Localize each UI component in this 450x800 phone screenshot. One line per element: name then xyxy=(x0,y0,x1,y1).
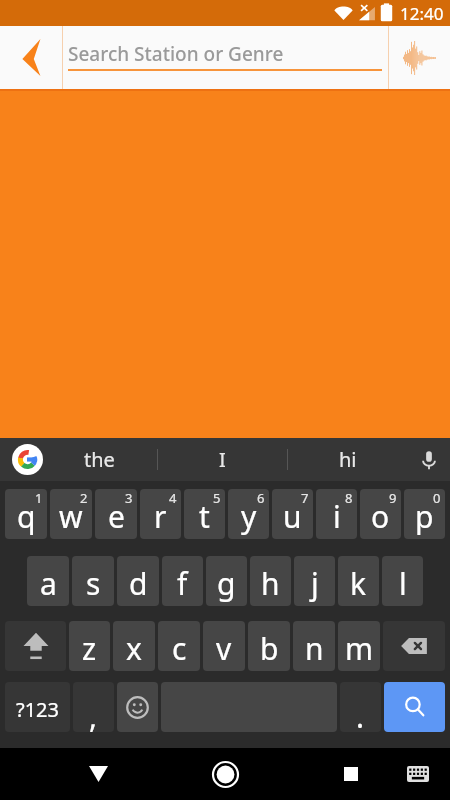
staticText: hi xyxy=(339,446,357,473)
staticText: 1 xyxy=(35,489,43,507)
button[interactable]: hi xyxy=(288,438,407,481)
button[interactable]: Hide keyboard xyxy=(74,748,122,800)
button[interactable]: t xyxy=(184,489,225,539)
button[interactable]: c xyxy=(158,621,200,671)
button[interactable]: m xyxy=(338,621,380,671)
button[interactable]: y xyxy=(228,489,269,539)
button[interactable]: Search xyxy=(384,682,445,732)
staticText: 7 xyxy=(301,489,309,507)
staticText: , xyxy=(89,696,98,732)
staticText: k xyxy=(350,563,367,604)
staticText: 9 xyxy=(389,489,397,507)
button[interactable]: Back xyxy=(0,26,62,89)
staticText: 0 xyxy=(433,489,441,507)
staticText: g xyxy=(217,563,236,604)
button[interactable]: e xyxy=(95,489,137,539)
staticText: b xyxy=(260,628,279,669)
staticText: h xyxy=(261,563,280,604)
staticText: e xyxy=(108,496,125,537)
button[interactable]: a xyxy=(27,556,69,606)
button[interactable]: Switch keyboard xyxy=(395,748,440,800)
staticText: u xyxy=(283,496,302,537)
staticText: p xyxy=(415,496,434,537)
button[interactable]: z xyxy=(69,621,110,671)
button[interactable]: Emoji xyxy=(117,682,158,732)
button[interactable]: o xyxy=(360,489,401,539)
button[interactable]: Voice input xyxy=(407,438,450,481)
button[interactable]: the xyxy=(50,438,149,481)
button[interactable]: I xyxy=(158,438,287,481)
staticText: 8 xyxy=(345,489,353,507)
button[interactable]: w xyxy=(50,489,92,539)
button[interactable]: u xyxy=(272,489,313,539)
staticText: v xyxy=(216,628,232,669)
button[interactable]: n xyxy=(293,621,335,671)
button[interactable]: q xyxy=(5,489,47,539)
button[interactable]: s xyxy=(72,556,114,606)
staticText: m xyxy=(345,628,374,669)
staticText: ?123 xyxy=(16,696,59,723)
button[interactable]: Backspace xyxy=(383,621,445,671)
button[interactable]: . xyxy=(340,682,381,732)
button[interactable]: Home xyxy=(201,748,249,800)
staticText: . xyxy=(356,696,365,732)
staticText: i xyxy=(333,496,341,537)
button[interactable]: p xyxy=(404,489,445,539)
staticText: s xyxy=(86,563,101,604)
staticText: 5 xyxy=(213,489,221,507)
button[interactable]: i xyxy=(316,489,357,539)
staticText: j xyxy=(311,563,319,604)
staticText: y xyxy=(241,496,257,537)
button[interactable]: h xyxy=(250,556,291,606)
button[interactable]: v xyxy=(203,621,245,671)
staticText: 6 xyxy=(257,489,265,507)
staticText: o xyxy=(371,496,390,537)
button[interactable]: f xyxy=(162,556,203,606)
staticText: t xyxy=(199,496,210,537)
staticText: l xyxy=(399,563,407,604)
button[interactable]: j xyxy=(294,556,335,606)
staticText: Search Station or Genre xyxy=(68,41,284,67)
staticText: d xyxy=(129,563,148,604)
staticText: 3 xyxy=(125,489,133,507)
staticText: 2 xyxy=(80,489,88,507)
button[interactable]: Shift xyxy=(5,621,66,671)
staticText: a xyxy=(40,563,57,604)
button[interactable]: Google xyxy=(0,438,54,481)
staticText: the xyxy=(84,446,115,473)
staticText: 4 xyxy=(169,489,177,507)
staticText: 12:40 xyxy=(400,2,444,25)
button[interactable]: ?123 xyxy=(5,682,70,732)
button[interactable]: l xyxy=(382,556,423,606)
button[interactable]: x xyxy=(113,621,155,671)
button[interactable]: g xyxy=(206,556,247,606)
staticText: c xyxy=(172,628,187,669)
button[interactable]: Voice search xyxy=(389,26,450,89)
button[interactable]: d xyxy=(117,556,159,606)
staticText: w xyxy=(59,496,83,537)
staticText: r xyxy=(154,496,167,537)
staticText: z xyxy=(82,628,97,669)
staticText: q xyxy=(17,496,36,537)
staticText: x xyxy=(126,628,142,669)
staticText: n xyxy=(305,628,324,669)
button[interactable]: r xyxy=(140,489,181,539)
staticText: I xyxy=(219,446,226,473)
button[interactable]: Recents xyxy=(327,748,375,800)
button[interactable]: b xyxy=(248,621,290,671)
button[interactable]: , xyxy=(73,682,114,732)
button[interactable]: k xyxy=(338,556,379,606)
staticText: f xyxy=(177,563,188,604)
